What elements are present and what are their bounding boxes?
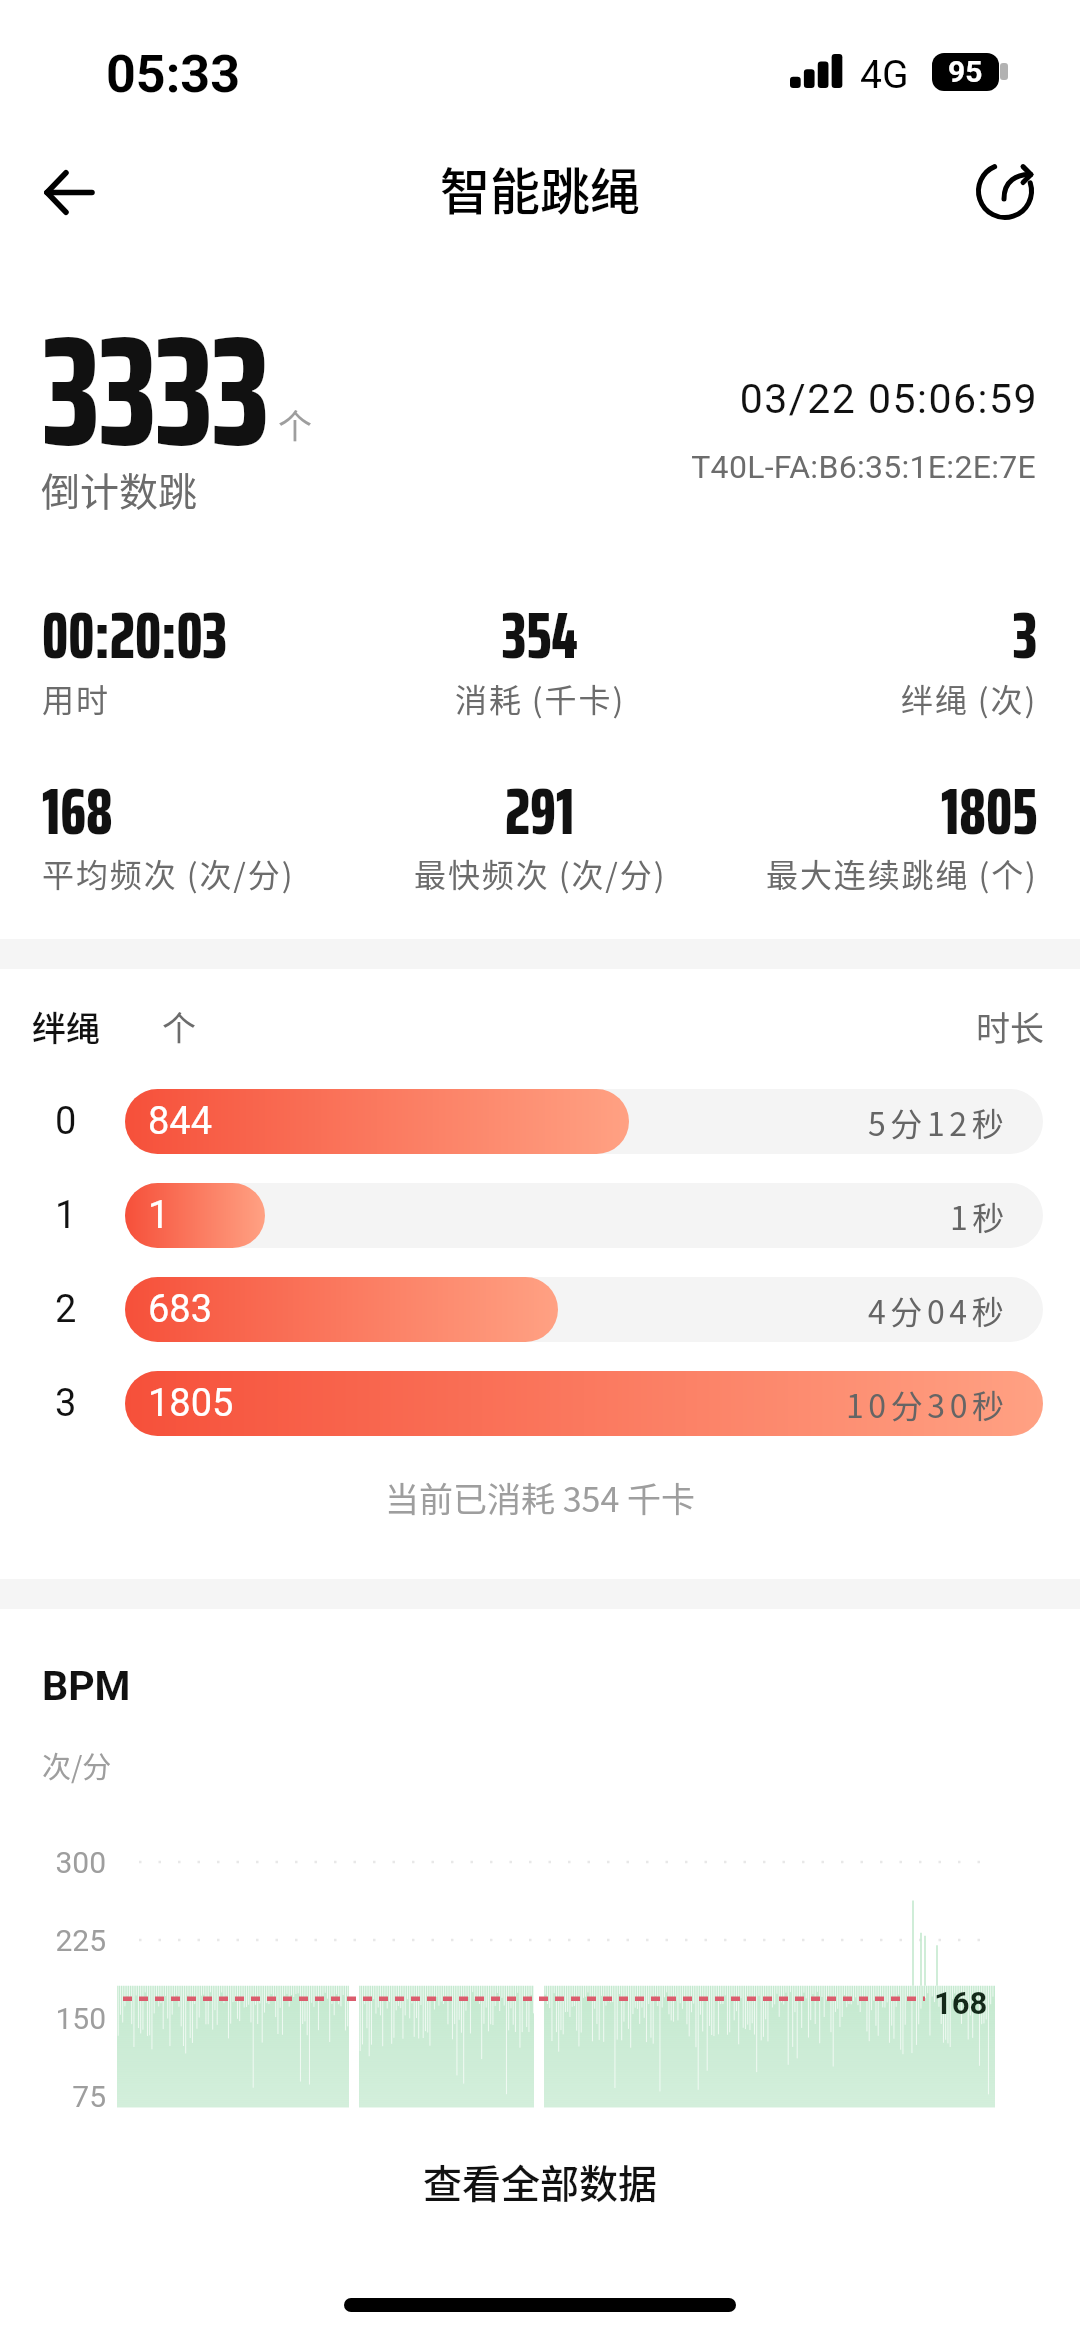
staticText: 95 — [948, 54, 983, 89]
staticText: 2 — [55, 1287, 77, 1332]
staticText: 5分12秒 — [868, 1099, 1009, 1145]
staticText: 1 — [55, 1193, 77, 1238]
staticText: 最快频次 (次/分) — [414, 850, 667, 896]
staticText: 3 — [55, 1381, 77, 1426]
staticText: 150 — [0, 2001, 106, 2036]
staticText: 3 — [1013, 583, 1038, 687]
staticText: 3333 — [43, 270, 270, 512]
staticText: 时长 — [0, 1002, 1044, 1051]
staticText: 次/分 — [42, 1744, 112, 1786]
staticText: 查看全部数据 — [423, 2153, 658, 2209]
staticText: BPM — [42, 1662, 131, 1710]
staticText: 1秒 — [950, 1193, 1009, 1239]
staticText: 300 — [0, 1845, 106, 1880]
staticText: 1 — [148, 1193, 170, 1238]
staticText: 844 — [148, 1099, 213, 1144]
staticText: 168 — [42, 759, 113, 863]
staticText: 683 — [148, 1287, 213, 1332]
staticText: 消耗 (千卡) — [455, 675, 626, 721]
staticText: 1805 — [148, 1381, 234, 1426]
staticText: 个 — [162, 1002, 196, 1051]
staticText: 平均频次 (次/分) — [42, 850, 295, 896]
button[interactable]: Back — [24, 147, 114, 237]
staticText: 0 — [55, 1099, 77, 1144]
staticText: 03/22 05:06:59 — [0, 375, 1038, 423]
staticText: 用时 — [42, 675, 110, 721]
staticText: 绊绳 — [32, 1002, 100, 1051]
staticText: 05:33 — [106, 44, 240, 105]
staticText: 最大连续跳绳 (个) — [766, 850, 1038, 896]
staticText: T40L-FA:B6:35:1E:2E:7E — [0, 448, 1036, 486]
staticText: 168 — [934, 1985, 988, 2021]
staticText: 倒计数跳 — [41, 461, 198, 517]
staticText: 智能跳绳 — [440, 152, 640, 224]
staticText: 00:20:03 — [42, 583, 228, 687]
staticText: 4分04秒 — [868, 1287, 1009, 1333]
staticText: 个 — [278, 400, 312, 449]
staticText: 225 — [0, 1923, 106, 1958]
staticText: 75 — [0, 2079, 106, 2114]
staticText: 当前已消耗 354 千卡 — [0, 1473, 1080, 1522]
button[interactable]: Share — [960, 144, 1050, 234]
staticText: 绊绳 (次) — [901, 675, 1038, 721]
button[interactable]: 查看全部数据 — [0, 2136, 1080, 2226]
staticText: 10分30秒 — [846, 1381, 1009, 1427]
staticText: 354 — [502, 583, 578, 687]
staticText: 291 — [505, 759, 575, 863]
staticText: 4G — [860, 52, 909, 98]
staticText: 1805 — [941, 759, 1038, 863]
